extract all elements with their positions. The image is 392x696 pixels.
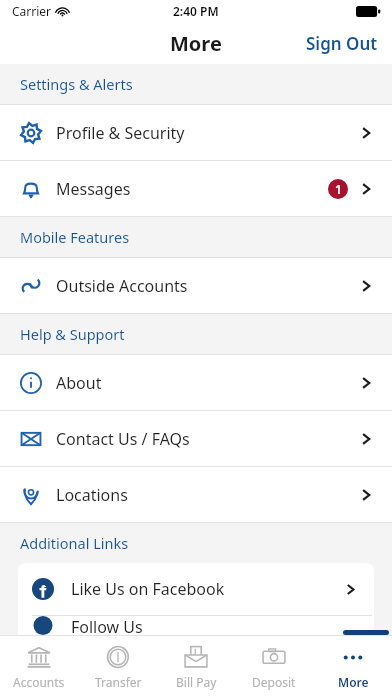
staticText: Bill Pay [176,674,217,690]
staticText: Like Us on Facebook [71,578,225,600]
button[interactable]: Locations [0,467,392,522]
button[interactable]: Accounts [0,636,78,690]
button[interactable]: Deposit [235,636,313,690]
button[interactable]: More [314,636,392,690]
staticText: Outside Accounts [56,275,188,297]
staticText: Accounts [13,674,65,690]
staticText: 2:40 PM [173,3,219,19]
button[interactable]: Profile & Security [0,105,392,160]
staticText: Contact Us / FAQs [56,428,190,450]
button[interactable]: Follow Us [18,616,374,635]
staticText: About [56,372,102,394]
button[interactable]: Like Us on Facebook [18,563,374,615]
staticText: More [170,30,222,57]
staticText: Messages [56,178,131,200]
staticText: Sign Out [306,32,378,55]
staticText: Mobile Features [20,227,130,247]
staticText: Additional Links [20,533,129,553]
button[interactable]: Contact Us / FAQs [0,411,392,466]
staticText: Carrier [12,3,52,19]
button[interactable]: Outside Accounts [0,258,392,313]
button[interactable]: Bill Pay [157,636,235,690]
staticText: 1 [335,181,342,197]
staticText: Settings & Alerts [20,74,133,94]
button[interactable]: Messages [0,161,392,216]
staticText: Locations [56,484,128,506]
button[interactable]: About [0,355,392,410]
staticText: Help & Support [20,324,125,344]
staticText: Follow Us [71,616,143,635]
staticText: Deposit [252,674,296,690]
staticText: Transfer [95,674,142,690]
staticText: Profile & Security [56,122,185,144]
staticText: More [338,674,369,690]
button[interactable]: Sign Out [292,24,392,63]
button[interactable]: Transfer [79,636,157,690]
